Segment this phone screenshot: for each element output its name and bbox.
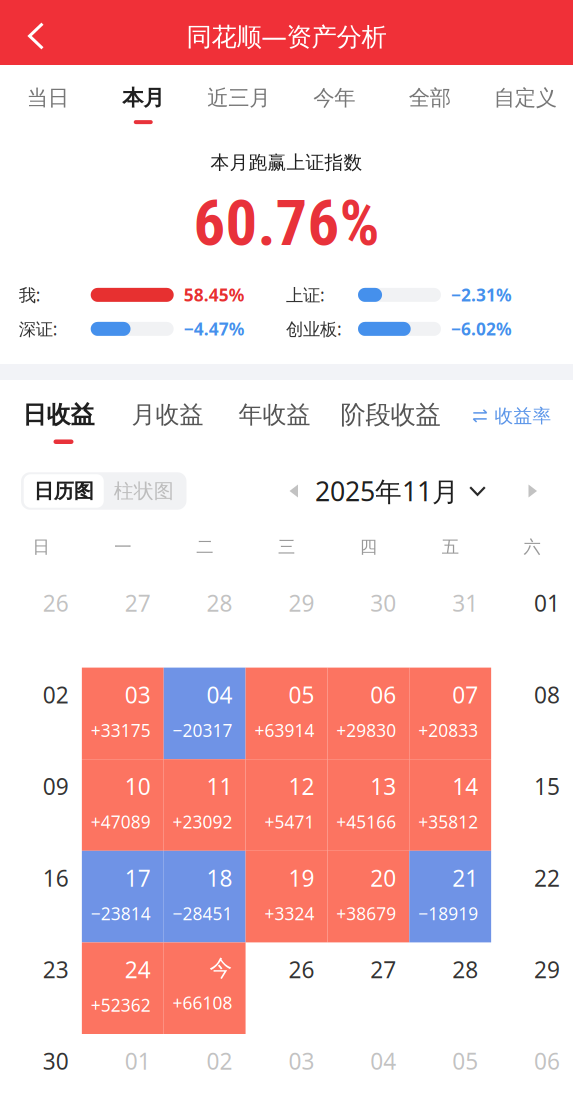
button[interactable]: 本月: [95, 65, 191, 130]
staticText: 年收益: [238, 400, 310, 429]
button[interactable]: 今: [164, 942, 246, 1034]
staticText: 01: [534, 588, 560, 618]
staticText: 28: [207, 588, 233, 618]
button[interactable]: 10: [82, 759, 164, 851]
staticText: 三: [278, 536, 295, 558]
button[interactable]: 23: [0, 942, 82, 1034]
button[interactable]: 当日: [0, 65, 95, 130]
staticText: 28: [452, 954, 478, 984]
button[interactable]: 16: [0, 851, 82, 942]
button[interactable]: 01: [82, 1034, 164, 1104]
button[interactable]: 日历图: [24, 474, 104, 508]
button[interactable]: 21: [409, 851, 491, 942]
staticText: −6.02%: [451, 317, 512, 340]
staticText: 19: [288, 863, 314, 893]
button[interactable]: 12: [246, 759, 327, 851]
button[interactable]: 01: [491, 576, 573, 668]
button[interactable]: 全部: [382, 65, 477, 130]
button[interactable]: 24: [82, 942, 164, 1034]
button[interactable]: 08: [491, 668, 573, 759]
staticText: +45166: [336, 810, 396, 833]
button[interactable]: 14: [409, 759, 491, 851]
staticText: 29: [534, 954, 560, 984]
button[interactable]: 2025年11月: [315, 469, 486, 513]
button[interactable]: 15: [491, 759, 573, 851]
button[interactable]: 26: [246, 942, 327, 1034]
button[interactable]: 日收益: [5, 380, 112, 452]
staticText: 我:: [19, 283, 41, 306]
button[interactable]: 13: [327, 759, 409, 851]
staticText: 18: [207, 863, 233, 893]
button[interactable]: 02: [0, 668, 82, 759]
staticText: 今: [210, 954, 233, 982]
button[interactable]: 今年: [286, 65, 382, 130]
staticText: 阶段收益: [340, 399, 440, 430]
staticText: 12: [288, 771, 314, 801]
staticText: 22: [534, 863, 560, 893]
button[interactable]: 05: [246, 668, 327, 759]
button[interactable]: 06: [327, 668, 409, 759]
staticText: 五: [442, 536, 459, 558]
button[interactable]: 02: [164, 1034, 246, 1104]
staticText: 24: [125, 954, 151, 984]
staticText: 日: [32, 536, 49, 558]
staticText: 04: [370, 1046, 396, 1076]
button[interactable]: 阶段收益: [326, 380, 455, 452]
staticText: −23814: [91, 902, 151, 925]
staticText: 06: [370, 680, 396, 710]
button[interactable]: 27: [327, 942, 409, 1034]
staticText: 27: [370, 954, 396, 984]
button[interactable]: 27: [82, 576, 164, 668]
button[interactable]: 年收益: [223, 380, 326, 452]
button[interactable]: 11: [164, 759, 246, 851]
button[interactable]: 自定义: [477, 65, 573, 130]
staticText: 16: [43, 863, 69, 893]
button[interactable]: 04: [164, 668, 246, 759]
button[interactable]: 29: [491, 942, 573, 1034]
staticText: 13: [370, 771, 396, 801]
button[interactable]: 30: [327, 576, 409, 668]
button[interactable]: 19: [246, 851, 327, 942]
button[interactable]: 28: [164, 576, 246, 668]
button[interactable]: 30: [0, 1034, 82, 1104]
button[interactable]: 柱状图: [104, 474, 184, 508]
button[interactable]: 收益率: [464, 380, 560, 452]
button[interactable]: 07: [409, 668, 491, 759]
staticText: 02: [43, 680, 69, 710]
button[interactable]: 28: [409, 942, 491, 1034]
button[interactable]: 月收益: [112, 380, 223, 452]
staticText: 收益率: [494, 404, 551, 427]
staticText: 17: [125, 863, 151, 893]
staticText: 26: [43, 588, 69, 618]
button[interactable]: 03: [246, 1034, 327, 1104]
button[interactable]: 09: [0, 759, 82, 851]
button[interactable]: 22: [491, 851, 573, 942]
staticText: −4.47%: [184, 317, 245, 340]
staticText: 创业板:: [286, 317, 342, 340]
staticText: 30: [43, 1046, 69, 1076]
staticText: +38679: [336, 902, 396, 925]
button[interactable]: 返回: [0, 0, 72, 65]
button[interactable]: 近三月: [191, 65, 286, 130]
button[interactable]: 26: [0, 576, 82, 668]
button[interactable]: 20: [327, 851, 409, 942]
button[interactable]: 06: [491, 1034, 573, 1104]
staticText: −2.31%: [451, 283, 512, 306]
button[interactable]: 31: [409, 576, 491, 668]
button[interactable]: 29: [246, 576, 327, 668]
staticText: 自定义: [494, 85, 557, 111]
staticText: 15: [534, 771, 560, 801]
button[interactable]: 04: [327, 1034, 409, 1104]
staticText: 日历图: [34, 479, 94, 503]
button[interactable]: 17: [82, 851, 164, 942]
button[interactable]: 03: [82, 668, 164, 759]
button[interactable]: 上一月: [276, 473, 312, 509]
staticText: 20: [370, 863, 396, 893]
staticText: 11: [207, 771, 233, 801]
staticText: 21: [452, 863, 478, 893]
button[interactable]: 05: [409, 1034, 491, 1104]
button[interactable]: 下一月: [515, 473, 551, 509]
button[interactable]: 18: [164, 851, 246, 942]
staticText: 02: [207, 1046, 233, 1076]
staticText: +52362: [91, 993, 151, 1016]
